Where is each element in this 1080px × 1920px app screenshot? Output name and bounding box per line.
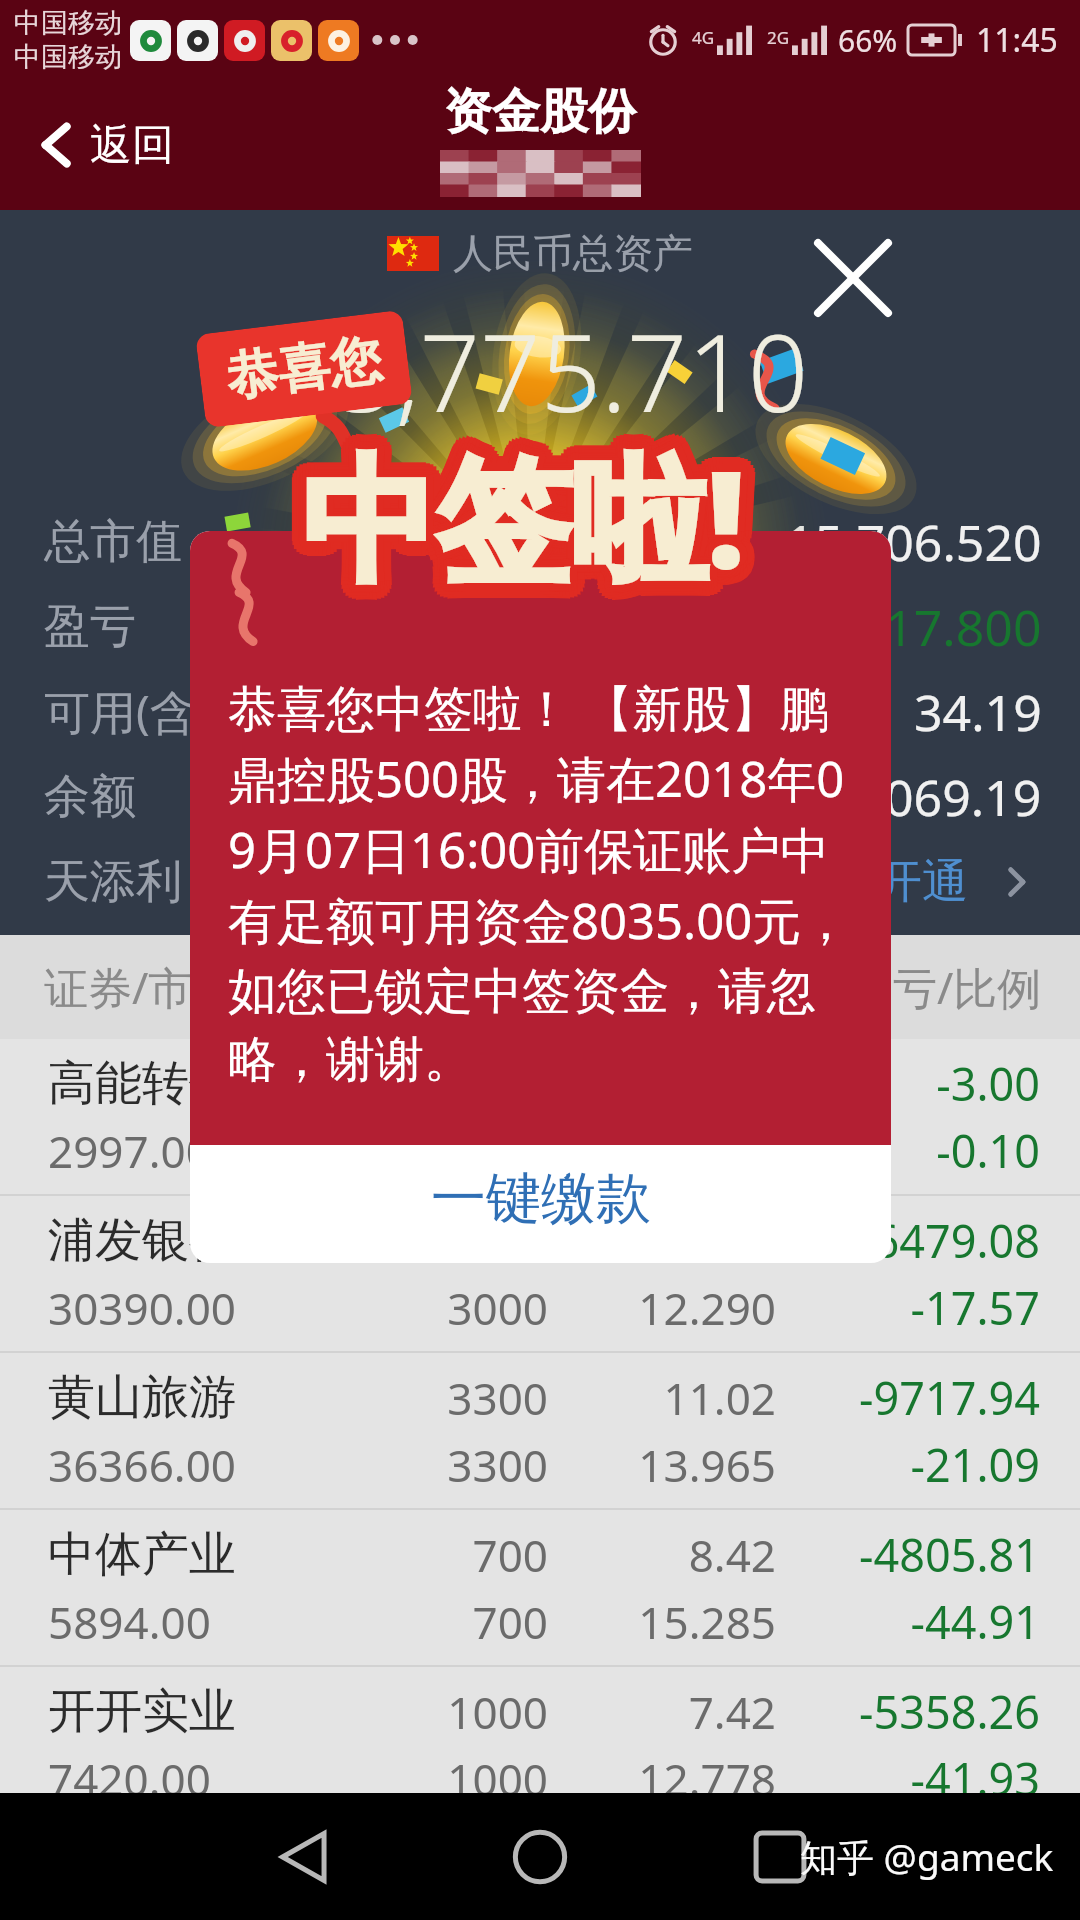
staticText: -41.93	[910, 1748, 1040, 1809]
staticText: -6479.08	[859, 1210, 1040, 1271]
staticText: 浦发银行	[48, 1211, 298, 1270]
staticText: 恭喜您	[223, 327, 385, 411]
staticText: 36366.00	[48, 1435, 298, 1495]
button[interactable]: 一键缴款	[190, 1145, 891, 1263]
staticText: -44.91	[910, 1591, 1040, 1652]
staticText: 1000	[298, 1749, 548, 1809]
staticText: 700	[298, 1592, 548, 1652]
staticText: -21.09	[910, 1434, 1040, 1495]
staticText: 中国移动	[14, 40, 122, 74]
staticText: 盈亏	[44, 598, 136, 656]
button[interactable]: Close	[805, 230, 900, 325]
staticText: 资金股份	[444, 82, 636, 142]
button[interactable]: 返回	[20, 113, 174, 177]
staticText: 天添利	[44, 853, 182, 911]
staticText: 中体产业	[48, 1525, 298, 1584]
staticText: 开通	[876, 853, 968, 911]
staticText: 3,775.710	[303, 284, 777, 428]
staticText: 知乎 @gameck	[800, 1831, 1054, 1882]
staticText: 1,069.19	[843, 763, 1042, 831]
staticText: 8.42	[548, 1525, 776, 1585]
staticText: -3.00	[936, 1053, 1040, 1114]
staticText: 3,775.710	[335, 299, 809, 443]
button[interactable]: Back	[255, 1807, 355, 1907]
staticText: -9717.94	[859, 1367, 1040, 1428]
staticText: 30390.00	[48, 1278, 298, 1338]
staticText: 11:45	[976, 18, 1058, 62]
staticText: -17.57	[910, 1277, 1040, 1338]
staticText: 证券/市值	[44, 957, 237, 1017]
staticText: -4805.81	[859, 1524, 1040, 1585]
staticText: 15.285	[548, 1592, 776, 1652]
staticText: 3000	[298, 1278, 548, 1338]
staticText: 余额	[44, 768, 136, 826]
staticText: 2997.00	[48, 1121, 298, 1181]
staticText: 3300	[298, 1435, 548, 1495]
staticText: 3300	[298, 1368, 548, 1428]
staticText: 3000	[298, 1211, 548, 1271]
staticText: 11.02	[548, 1368, 776, 1428]
staticText: 可用(含冻结)	[44, 680, 302, 743]
staticText: 4G	[692, 26, 715, 49]
staticText: 12.778	[548, 1749, 776, 1809]
staticText: 黄山旅游	[48, 1368, 298, 1427]
staticText: -0.10	[936, 1120, 1040, 1181]
staticText: 盈亏/比例	[849, 957, 1042, 1017]
button[interactable]: 高能转债	[0, 1039, 1080, 1194]
button[interactable]: 中体产业	[0, 1510, 1080, 1665]
staticText: 总市值	[44, 513, 182, 571]
staticText: 返回	[90, 119, 174, 172]
button[interactable]: Home	[490, 1807, 590, 1907]
staticText: 一键缴款	[431, 1164, 651, 1233]
staticText: 2G	[767, 26, 790, 49]
staticText: 66%	[838, 20, 898, 61]
staticText: 112.123	[548, 1121, 776, 1181]
staticText: 13.965	[548, 1435, 776, 1495]
staticText: 10.130	[548, 1211, 776, 1271]
staticText: 1000	[298, 1682, 548, 1742]
button[interactable]: 浦发银行	[0, 1196, 1080, 1351]
button[interactable]: 天添利	[44, 839, 1042, 924]
staticText: 中国移动	[14, 6, 122, 40]
staticText: 700	[298, 1525, 548, 1585]
button[interactable]: Recents	[730, 1807, 830, 1907]
staticText: 12.290	[548, 1278, 776, 1338]
staticText: 5894.00	[48, 1592, 298, 1652]
button[interactable]: 黄山旅游	[0, 1353, 1080, 1508]
staticText: 34.19	[914, 678, 1042, 746]
staticText: 开开实业	[48, 1682, 298, 1741]
staticText: 30	[298, 1054, 548, 1114]
staticText: 15,706.520	[786, 508, 1042, 576]
staticText: -17.800	[869, 593, 1042, 661]
staticText: 恭喜您中签啦！ 【新股】鹏 鼎控股500股，请在2018年0 9月07日16:0…	[228, 674, 851, 1090]
staticText: 人民币总资产	[453, 228, 693, 278]
button[interactable]: 开开实业	[0, 1667, 1080, 1822]
staticText: 7420.00	[48, 1749, 298, 1809]
staticText: -5358.26	[859, 1681, 1040, 1742]
staticText: 高能转债	[48, 1054, 298, 1113]
staticText: 7.42	[548, 1682, 776, 1742]
staticText: 30	[298, 1121, 548, 1181]
